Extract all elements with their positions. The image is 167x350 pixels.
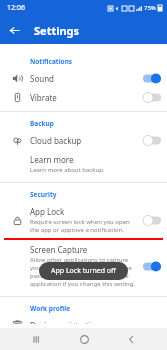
button[interactable]: Recents	[25, 328, 47, 350]
staticText: Backup	[30, 119, 54, 128]
button[interactable]: Toggle on	[143, 73, 161, 84]
staticText: App Lock turned off	[51, 266, 116, 276]
button[interactable]: Toggle on	[143, 261, 161, 272]
staticText: Vibrate	[30, 92, 57, 103]
staticText: Notifications	[30, 57, 73, 66]
staticText: Learn more about backup.	[30, 166, 105, 174]
staticText: 75%	[144, 4, 156, 12]
button[interactable]: Learn more	[0, 150, 167, 178]
button[interactable]: Device registration	[0, 316, 167, 328]
staticText: Cloud backup	[30, 135, 82, 146]
button[interactable]: Toggle off	[143, 92, 161, 103]
staticText: Screen Capture	[30, 244, 88, 255]
staticText: Allow other applications to capture your…	[30, 256, 139, 288]
button[interactable]: Back	[120, 328, 142, 350]
staticText: Device registration	[30, 320, 101, 324]
button[interactable]: Cloud backup	[0, 131, 167, 150]
button[interactable]: Home	[73, 328, 95, 350]
staticText: Settings	[34, 23, 80, 38]
button[interactable]: Sound	[0, 69, 167, 88]
button[interactable]: Screen Capture	[0, 240, 167, 292]
button[interactable]: Toggle off	[143, 215, 161, 226]
staticText: Sound	[30, 73, 55, 84]
staticText: Learn more	[30, 154, 74, 165]
staticText: Require screen lock when you open the ap…	[30, 218, 139, 234]
button[interactable]: Toggle off	[143, 135, 161, 146]
button[interactable]: Vibrate	[0, 88, 167, 107]
staticText: App Lock	[30, 206, 65, 217]
staticText: 12:06	[7, 3, 25, 13]
button[interactable]: Back	[0, 16, 28, 44]
staticText: Security	[30, 190, 57, 199]
button[interactable]: App Lock	[0, 202, 167, 238]
staticText: Work profile	[30, 304, 71, 313]
